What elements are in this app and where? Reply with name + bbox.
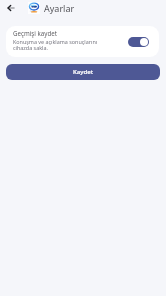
staticText: Geçmişi kaydet [13, 29, 57, 37]
button[interactable]: Kaydet [6, 64, 160, 80]
button[interactable]: Back [3, 0, 18, 15]
button[interactable]: Geçmişi kaydet [6, 26, 159, 57]
button[interactable]: Geçmişi kaydet [128, 37, 149, 47]
staticText: Kaydet [73, 68, 93, 76]
staticText: Konuşma ve açıklama sonuçlarını cihazda … [13, 38, 98, 51]
staticText: Ayarlar [44, 2, 75, 14]
